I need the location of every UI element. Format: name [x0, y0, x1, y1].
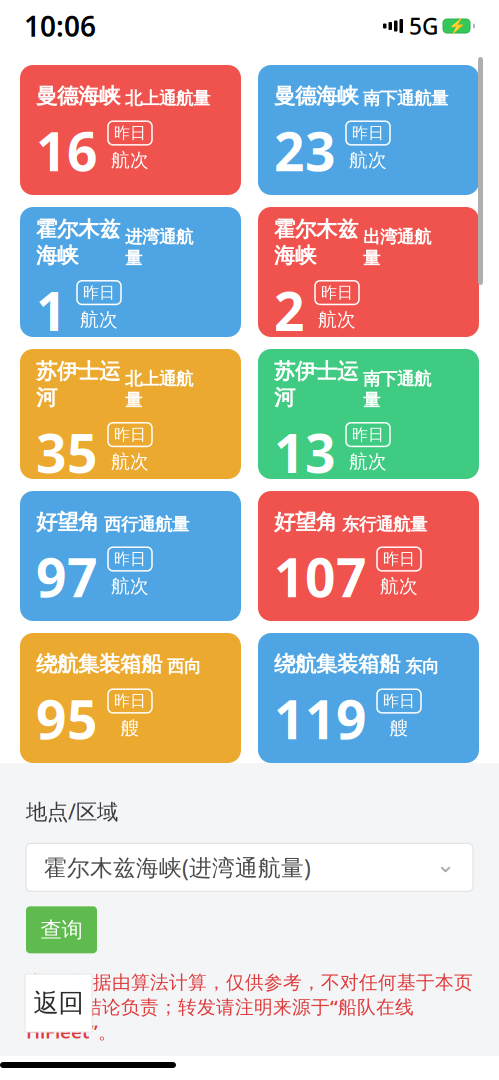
staticText: 2 [274, 275, 305, 346]
staticText: 霍尔木兹海峡(进湾通航量) [44, 852, 311, 882]
staticText: 南下通航量 [363, 368, 431, 411]
staticText: 昨日 [321, 283, 353, 302]
staticText: 昨日 [383, 691, 415, 711]
button[interactable]: 好望角 [258, 491, 479, 621]
button[interactable]: 返回 [25, 974, 92, 1032]
staticText: 声明: 数据由算法计算，仅供参考，不对任何基于本页信息的结论负责；转发请注明来源… [26, 969, 473, 1044]
staticText: 昨日 [83, 283, 115, 302]
staticText: 昨日 [383, 549, 415, 569]
staticText: 霍尔木兹海峡 [274, 216, 358, 269]
staticText: 好望角 [274, 509, 337, 535]
staticText: 苏伊士运河 [274, 358, 358, 411]
staticText: 10:06 [24, 7, 96, 45]
staticText: 北上通航量 [125, 368, 193, 411]
staticText: 35 [36, 417, 98, 488]
staticText: 昨日 [352, 123, 384, 143]
button[interactable]: 霍尔木兹海峡 [258, 207, 479, 337]
staticText: ⚡ [447, 18, 465, 34]
staticText: 地点/区域 [26, 797, 118, 825]
staticText: 西向 [167, 656, 201, 677]
staticText: 南下通航量 [363, 88, 448, 109]
button[interactable]: 苏伊士运河 [258, 349, 479, 479]
staticText: 东行通航量 [342, 514, 427, 535]
staticText: 绕航集装箱船 [274, 651, 400, 677]
staticText: 昨日 [114, 691, 146, 711]
staticText: 97 [36, 541, 98, 612]
staticText: 昨日 [114, 549, 146, 569]
staticText: 航次 [80, 308, 118, 331]
button[interactable]: 查询 [26, 906, 97, 953]
staticText: 北上通航量 [125, 88, 210, 109]
staticText: 航次 [111, 575, 149, 598]
button[interactable]: 绕航集装箱船 [20, 633, 241, 763]
button[interactable]: 霍尔木兹海峡 [20, 207, 241, 337]
staticText: 航次 [349, 450, 387, 473]
staticText: 1 [36, 275, 67, 346]
staticText: 曼德海峡 [36, 83, 120, 109]
staticText: 95 [36, 683, 98, 754]
staticText: 航次 [111, 450, 149, 473]
staticText: 昨日 [114, 425, 146, 444]
staticText: 107 [274, 541, 367, 612]
staticText: 艘 [120, 717, 139, 740]
button[interactable]: 霍尔木兹海峡(进湾通航量) [26, 843, 473, 891]
staticText: 苏伊士运河 [36, 358, 120, 411]
staticText: 进湾通航量 [125, 226, 193, 269]
staticText: ⌄ [436, 851, 455, 877]
staticText: 好望角 [36, 509, 99, 535]
staticText: 航次 [111, 149, 149, 172]
button[interactable]: 好望角 [20, 491, 241, 621]
button[interactable]: 绕航集装箱船 [258, 633, 479, 763]
staticText: 查询 [40, 917, 82, 943]
staticText: 昨日 [114, 123, 146, 143]
staticText: 航次 [380, 575, 418, 598]
staticText: 曼德海峡 [274, 83, 358, 109]
staticText: 119 [274, 683, 367, 754]
button[interactable]: 苏伊士运河 [20, 349, 241, 479]
staticText: 昨日 [352, 425, 384, 444]
staticText: 航次 [318, 308, 356, 331]
staticText: 艘 [389, 717, 408, 740]
button[interactable]: 曼德海峡 [258, 65, 479, 195]
button[interactable]: 曼德海峡 [20, 65, 241, 195]
staticText: 霍尔木兹海峡 [36, 216, 120, 269]
staticText: 东向 [405, 656, 439, 677]
staticText: 出湾通航量 [363, 226, 431, 269]
staticText: 5G [409, 11, 438, 41]
staticText: 13 [274, 417, 336, 488]
staticText: 西行通航量 [104, 514, 189, 535]
staticText: 23 [274, 115, 336, 186]
staticText: 返回 [33, 987, 83, 1018]
staticText: 航次 [349, 149, 387, 172]
staticText: 16 [36, 115, 98, 186]
staticText: 绕航集装箱船 [36, 651, 162, 677]
